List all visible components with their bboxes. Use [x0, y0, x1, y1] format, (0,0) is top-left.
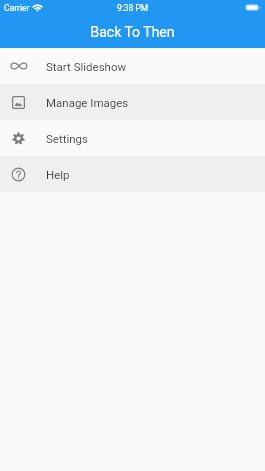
- other: Help: [0, 156, 37, 192]
- staticText: Settings: [46, 132, 88, 145]
- button[interactable]: Start Slideshow: [0, 48, 265, 84]
- staticText: Start Slideshow: [46, 60, 127, 73]
- button[interactable]: Manage Images: [0, 84, 265, 120]
- staticText: Manage Images: [46, 96, 129, 109]
- button[interactable]: Settings: [0, 120, 265, 156]
- staticText: Carrier: [4, 3, 30, 13]
- button[interactable]: Help: [0, 156, 265, 192]
- other: Start Slideshow: [0, 48, 37, 84]
- staticText: Back To Then: [0, 24, 265, 40]
- other: Settings: [0, 120, 37, 156]
- other: Manage Images: [0, 84, 37, 120]
- staticText: 9:38 PM: [117, 3, 149, 13]
- staticText: Help: [46, 168, 70, 181]
